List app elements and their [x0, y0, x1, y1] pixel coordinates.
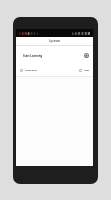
staticText: Lyceum [49, 39, 61, 43]
button[interactable]: Show Basic [20, 69, 38, 72]
staticText: Start Learning [23, 54, 43, 58]
staticText: Show Basic [25, 69, 38, 72]
staticText: Next [84, 69, 90, 72]
button[interactable]: Start Learning [16, 46, 93, 65]
button[interactable]: Next [79, 69, 90, 72]
button[interactable]: Settings [83, 52, 90, 59]
